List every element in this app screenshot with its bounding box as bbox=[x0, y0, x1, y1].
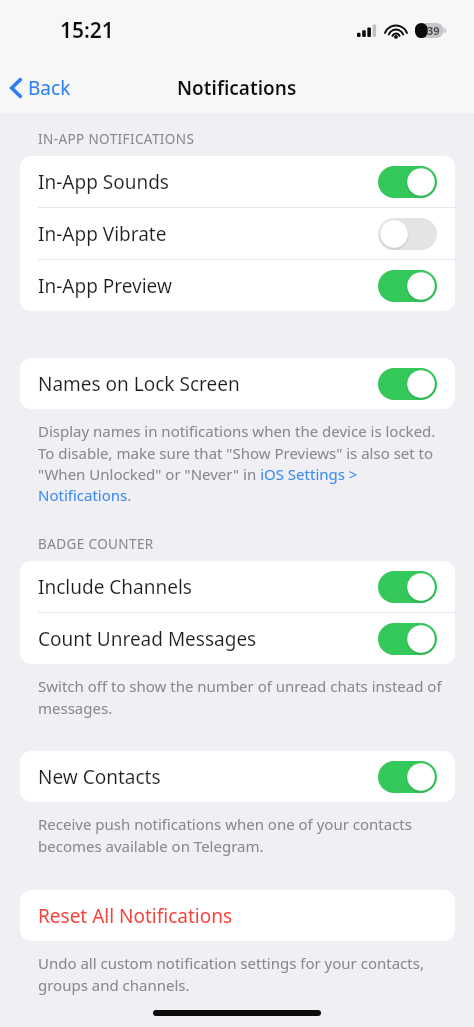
staticText: Switch off to show the number of unread … bbox=[38, 676, 444, 718]
button[interactable]: On bbox=[378, 571, 437, 603]
button[interactable]: Off bbox=[378, 218, 437, 250]
staticText: In-App Vibrate bbox=[38, 221, 378, 247]
staticText: Display names in notifications when the … bbox=[38, 421, 448, 505]
button[interactable]: Back bbox=[0, 70, 83, 106]
staticText: Names on Lock Screen bbox=[38, 371, 378, 397]
staticText: Include Channels bbox=[38, 574, 378, 600]
button[interactable]: In-App Sounds bbox=[20, 156, 455, 207]
button[interactable]: New Contacts bbox=[20, 751, 455, 802]
button[interactable]: On bbox=[378, 166, 437, 198]
button[interactable]: In-App Preview bbox=[20, 260, 455, 311]
button[interactable]: Include Channels bbox=[20, 561, 455, 612]
button[interactable]: On bbox=[378, 270, 437, 302]
button[interactable]: Reset All Notifications bbox=[20, 890, 455, 941]
staticText: 39 bbox=[427, 23, 440, 38]
button[interactable]: In-App Vibrate bbox=[20, 208, 455, 259]
button[interactable]: On bbox=[378, 623, 437, 655]
staticText: Count Unread Messages bbox=[38, 626, 378, 652]
staticText: In-App Sounds bbox=[38, 169, 378, 195]
staticText: IN-APP NOTIFICATIONS bbox=[38, 130, 195, 148]
staticText: 15:21 bbox=[60, 16, 114, 45]
staticText: Receive push notifications when one of y… bbox=[38, 814, 444, 856]
button[interactable]: Count Unread Messages bbox=[20, 613, 455, 664]
staticText: Notifications bbox=[177, 75, 297, 101]
staticText: Undo all custom notification settings fo… bbox=[38, 953, 444, 995]
staticText: Back bbox=[28, 75, 71, 101]
other: Back bbox=[10, 78, 22, 98]
staticText: In-App Preview bbox=[38, 273, 378, 299]
staticText: BADGE COUNTER bbox=[38, 535, 154, 553]
staticText: Reset All Notifications bbox=[38, 903, 233, 929]
staticText: New Contacts bbox=[38, 764, 378, 790]
button[interactable]: On bbox=[378, 761, 437, 793]
button[interactable]: On bbox=[378, 368, 437, 400]
button[interactable]: Names on Lock Screen bbox=[20, 358, 455, 409]
